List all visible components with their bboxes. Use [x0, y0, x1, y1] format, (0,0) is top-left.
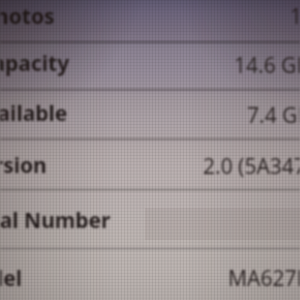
staticText: Capacity: [0, 49, 70, 78]
staticText: MA627LL: [228, 264, 300, 293]
staticText: Version: [0, 151, 47, 180]
button[interactable]: Photos: [0, 2, 55, 31]
staticText: Serial Number: [0, 206, 111, 235]
staticText: 14.6 GB: [234, 51, 300, 80]
button[interactable]: Version: [0, 151, 47, 180]
other: Serial number hidden: [145, 208, 300, 240]
staticText: 7.4 GB: [247, 101, 300, 130]
button[interactable]: Available: [0, 99, 68, 128]
button[interactable]: Capacity: [0, 49, 70, 78]
button[interactable]: Model: [0, 264, 22, 293]
staticText: Available: [0, 99, 68, 128]
button[interactable]: Serial Number: [0, 206, 111, 235]
staticText: 2.0 (5A347): [203, 152, 300, 181]
staticText: 1,0: [290, 2, 300, 31]
staticText: Model: [0, 264, 22, 293]
staticText: Photos: [0, 2, 55, 31]
